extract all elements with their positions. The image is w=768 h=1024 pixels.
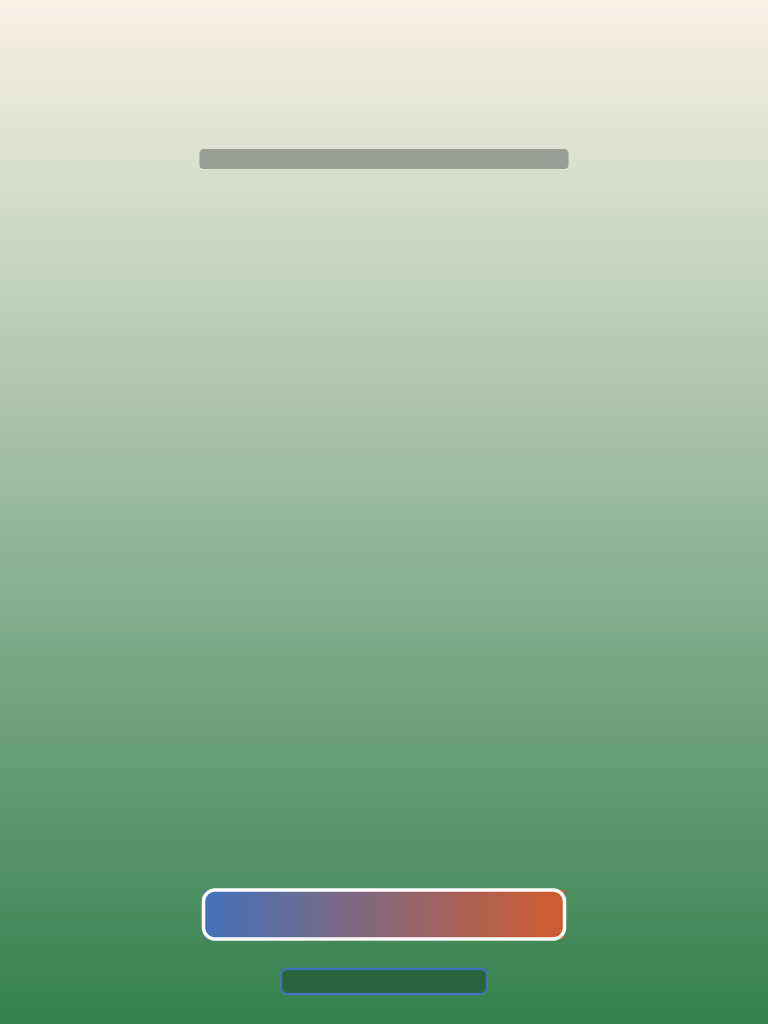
button[interactable]: Primary action [203,890,564,939]
button[interactable]: Secondary action [281,969,487,994]
